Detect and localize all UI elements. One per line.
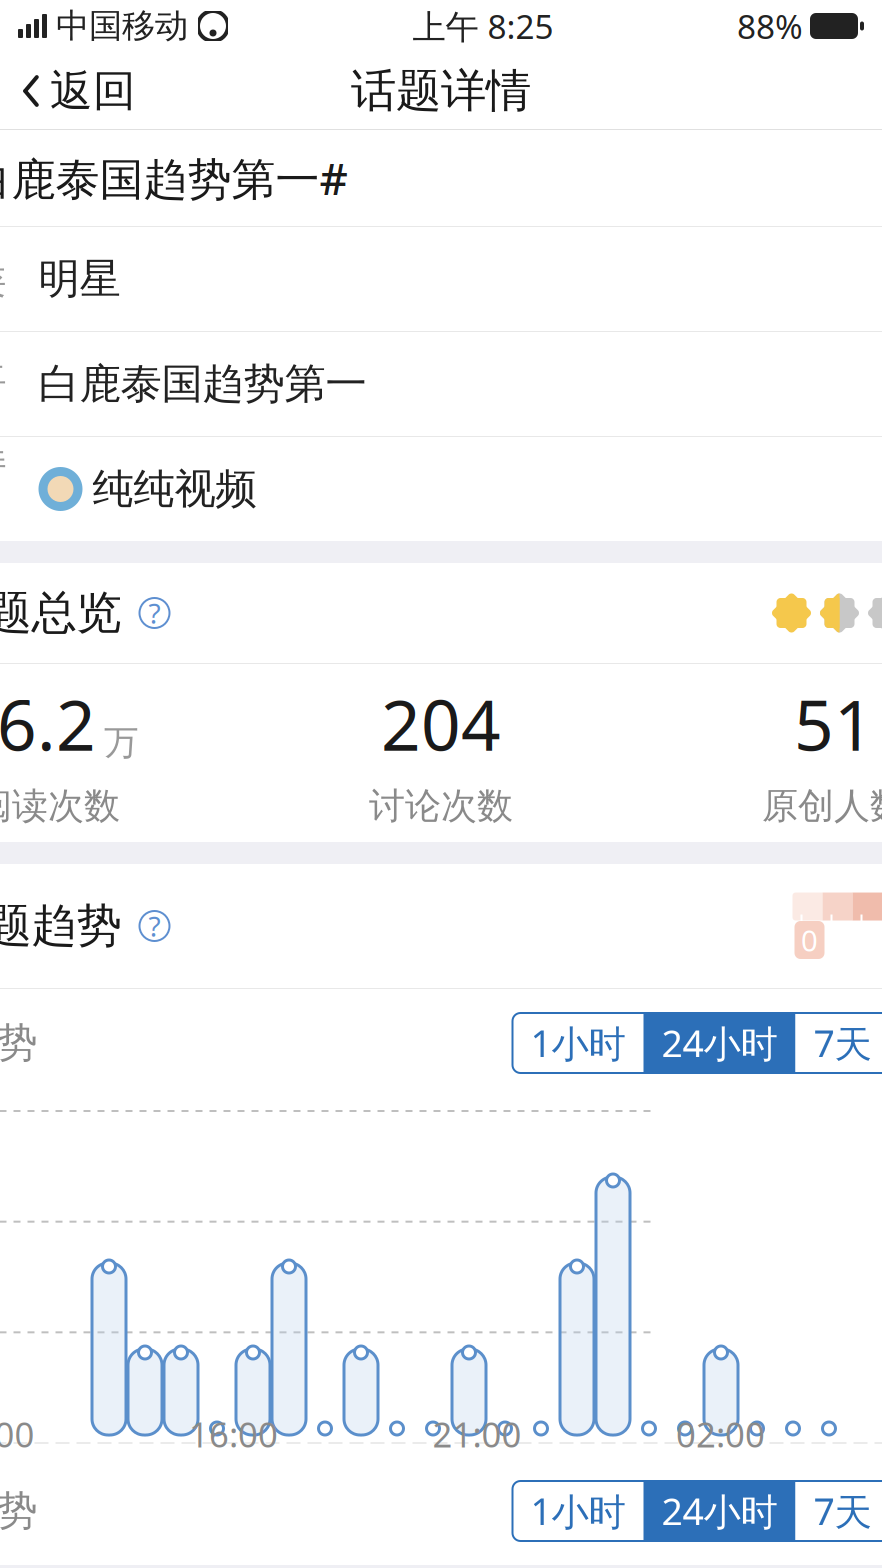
- button[interactable]: 关于话题总览: [137, 596, 171, 630]
- button[interactable]: 24小时: [643, 1481, 795, 1541]
- staticText: 16:00: [189, 1411, 278, 1457]
- button[interactable]: 1小时: [512, 1481, 643, 1541]
- staticText: 0: [801, 920, 818, 959]
- staticText: #白鹿泰国趋势第一#: [0, 149, 347, 207]
- staticText: 白鹿泰国趋势第一: [38, 359, 366, 409]
- button[interactable]: 7天: [795, 1481, 882, 1541]
- staticText: 56.2: [0, 678, 96, 770]
- staticText: 原创人数: [762, 784, 882, 828]
- button[interactable]: 24小时: [643, 1013, 795, 1073]
- staticText: 24小时: [661, 1018, 777, 1068]
- staticText: 返回: [50, 65, 136, 117]
- staticText: 7天: [813, 1018, 871, 1068]
- staticText: 阅读次数: [0, 784, 120, 828]
- button[interactable]: 1小时: [512, 1013, 643, 1073]
- staticText: 上午 8:25: [412, 4, 553, 48]
- staticText: 分类: [0, 254, 6, 303]
- staticText: 万: [104, 721, 139, 764]
- button[interactable]: 返回: [0, 52, 156, 130]
- staticText: 中国移动: [56, 5, 188, 46]
- button[interactable]: #白鹿泰国趋势第一#: [0, 130, 882, 226]
- staticText: 204: [381, 678, 501, 770]
- staticText: 1小时: [530, 1018, 625, 1068]
- staticText: 主持人: [0, 440, 6, 538]
- staticText: 话题详情: [351, 63, 531, 119]
- staticText: 88%: [737, 4, 803, 48]
- staticText: 导语: [0, 359, 6, 408]
- staticText: 纯纯视频: [92, 464, 256, 514]
- staticText: 02:00: [676, 1411, 765, 1457]
- staticText: 24小时: [661, 1486, 777, 1536]
- staticText: 明星: [38, 254, 120, 304]
- button[interactable]: 关于话题趋势: [137, 909, 171, 943]
- staticText: 21:00: [432, 1411, 521, 1457]
- staticText: 话题趋势: [0, 898, 121, 954]
- staticText: 51: [794, 678, 874, 770]
- button[interactable]: 7天: [795, 1013, 882, 1073]
- staticText: 话题总览: [0, 585, 121, 641]
- staticText: 讨论次数: [369, 784, 513, 828]
- staticText: 讨论趋势: [0, 1486, 37, 1535]
- staticText: 阅读趋势: [0, 1018, 37, 1067]
- staticText: ?: [148, 594, 160, 632]
- staticText: 7天: [813, 1486, 871, 1536]
- staticText: 11:00: [0, 1411, 34, 1457]
- staticText: ?: [148, 907, 160, 945]
- staticText: 1小时: [530, 1486, 625, 1536]
